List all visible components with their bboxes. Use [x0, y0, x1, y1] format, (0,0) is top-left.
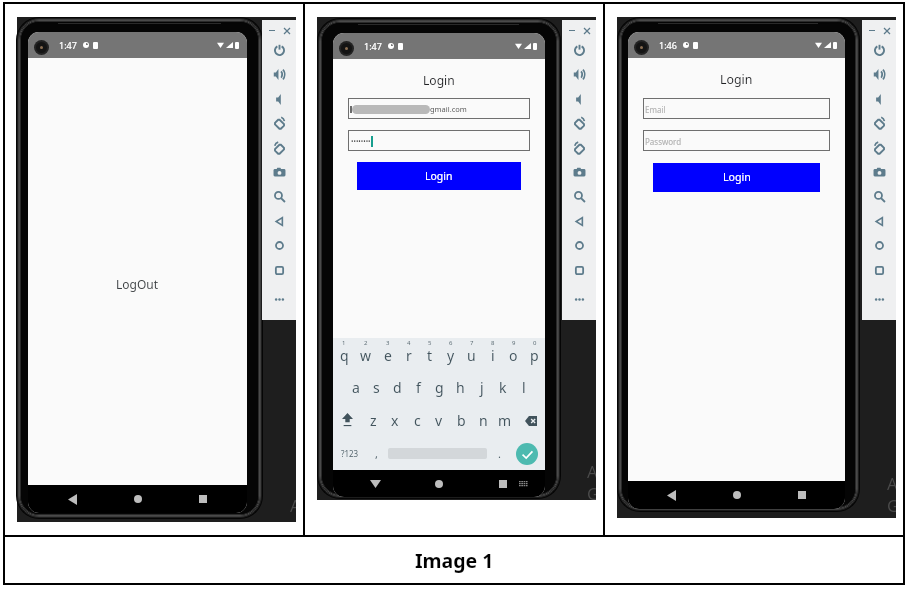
button[interactable]: Home: [562, 233, 596, 258]
button[interactable]: Back: [50, 486, 94, 512]
button[interactable]: Rotate left: [262, 111, 296, 136]
button[interactable]: ,: [366, 437, 386, 470]
button[interactable]: Power: [262, 38, 296, 63]
button[interactable]: Rotate left: [862, 111, 896, 136]
button[interactable]: m: [494, 404, 516, 437]
button[interactable]: LogOut: [116, 276, 159, 292]
button[interactable]: Overview: [262, 258, 296, 283]
button[interactable]: Shift: [333, 404, 362, 437]
button[interactable]: ?123: [333, 437, 366, 470]
staticText: q: [340, 346, 349, 365]
button[interactable]: Volume up: [862, 62, 896, 87]
staticText: h: [456, 378, 465, 397]
button[interactable]: Volume down: [262, 87, 296, 112]
button[interactable]: Volume up: [562, 62, 596, 87]
button[interactable]: Switch keyboard: [516, 477, 530, 491]
button[interactable]: 4: [398, 338, 419, 371]
staticText: r: [406, 346, 412, 365]
button[interactable]: Zoom: [562, 184, 596, 209]
button[interactable]: Screenshot: [262, 160, 296, 185]
button[interactable]: Minimize: [565, 24, 578, 37]
button[interactable]: Email: [643, 98, 830, 119]
button[interactable]: Zoom: [862, 184, 896, 209]
button[interactable]: z: [362, 404, 384, 437]
button[interactable]: Close: [280, 24, 293, 37]
button[interactable]: Back: [649, 482, 693, 508]
button[interactable]: Overview: [562, 258, 596, 283]
button[interactable]: Recents: [780, 482, 824, 508]
button[interactable]: Home: [862, 233, 896, 258]
button[interactable]: Enter: [509, 437, 545, 470]
staticText: Login: [720, 71, 753, 88]
button[interactable]: Backspace: [516, 404, 545, 437]
button[interactable]: Volume down: [562, 87, 596, 112]
button[interactable]: 9: [503, 338, 524, 371]
button[interactable]: 8: [482, 338, 503, 371]
button[interactable]: Rotate left: [562, 111, 596, 136]
button[interactable]: Back: [262, 209, 296, 234]
button[interactable]: Power: [862, 38, 896, 63]
button[interactable]: Zoom: [262, 184, 296, 209]
button[interactable]: Power: [562, 38, 596, 63]
button[interactable]: v: [428, 404, 450, 437]
button[interactable]: 7: [461, 338, 482, 371]
button[interactable]: n: [472, 404, 494, 437]
button[interactable]: l: [513, 371, 534, 404]
button[interactable]: More: [262, 287, 296, 312]
button[interactable]: k: [492, 371, 513, 404]
button[interactable]: Rotate right: [262, 136, 296, 161]
staticText: c: [414, 411, 421, 430]
button[interactable]: d: [387, 371, 408, 404]
button[interactable]: h: [450, 371, 471, 404]
button[interactable]: Back: [862, 209, 896, 234]
button[interactable]: Back: [562, 209, 596, 234]
button[interactable]: Home: [715, 482, 759, 508]
button[interactable]: 2: [355, 338, 377, 371]
button[interactable]: 3: [377, 338, 398, 371]
button[interactable]: Login: [357, 162, 521, 190]
button[interactable]: Overview: [862, 258, 896, 283]
button[interactable]: More: [862, 287, 896, 312]
button[interactable]: Volume up: [262, 62, 296, 87]
button[interactable]: x: [384, 404, 406, 437]
staticText: 4: [407, 339, 411, 347]
button[interactable]: Minimize: [265, 24, 278, 37]
button[interactable]: gmail.com: [348, 98, 530, 119]
button[interactable]: s: [366, 371, 387, 404]
button[interactable]: Minimize: [865, 24, 878, 37]
button[interactable]: Home: [262, 233, 296, 258]
button[interactable]: b: [450, 404, 472, 437]
button[interactable]: 6: [440, 338, 461, 371]
button[interactable]: f: [408, 371, 429, 404]
staticText: e: [384, 346, 392, 365]
button[interactable]: Home: [417, 471, 461, 497]
button[interactable]: Hide keyboard: [353, 471, 397, 497]
button[interactable]: Rotate right: [562, 136, 596, 161]
button[interactable]: Home: [116, 486, 160, 512]
button[interactable]: Volume down: [862, 87, 896, 112]
staticText: t: [427, 346, 433, 365]
staticText: .: [498, 446, 501, 461]
button[interactable]: Password: [643, 130, 830, 151]
button[interactable]: Login: [653, 163, 820, 192]
button[interactable]: g: [429, 371, 450, 404]
button[interactable]: 0: [524, 338, 545, 371]
button[interactable]: Screenshot: [562, 160, 596, 185]
staticText: G: [887, 494, 896, 516]
button[interactable]: a: [345, 371, 366, 404]
button[interactable]: 5: [419, 338, 440, 371]
button[interactable]: Recents: [481, 471, 525, 497]
button[interactable]: 1: [333, 338, 355, 371]
button[interactable]: Screenshot: [862, 160, 896, 185]
button[interactable]: ••••••••: [348, 130, 530, 151]
button[interactable]: Close: [580, 24, 593, 37]
button[interactable]: Rotate right: [862, 136, 896, 161]
button[interactable]: More: [562, 287, 596, 312]
button[interactable]: Close: [880, 24, 893, 37]
button[interactable]: Recents: [181, 486, 225, 512]
button[interactable]: j: [471, 371, 492, 404]
button[interactable]: c: [406, 404, 428, 437]
button[interactable]: .: [489, 437, 509, 470]
